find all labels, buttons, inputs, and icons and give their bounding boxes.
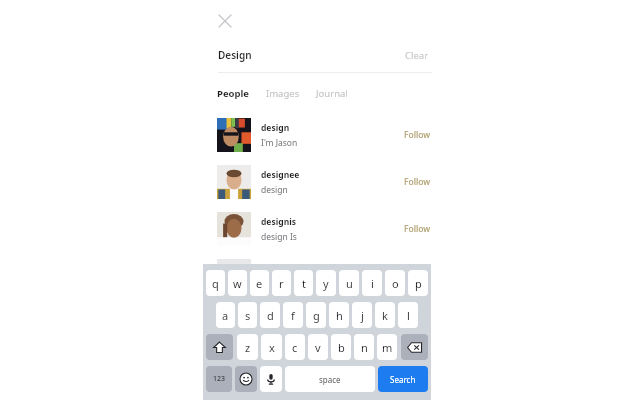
staticText: t xyxy=(302,276,306,291)
staticText: a xyxy=(222,308,229,323)
staticText: u xyxy=(346,276,353,291)
staticText: design Is xyxy=(261,231,297,243)
button[interactable]: Follow xyxy=(400,172,435,192)
staticText: b xyxy=(338,340,345,355)
staticText: Follow xyxy=(404,223,431,235)
button[interactable]: l xyxy=(398,302,418,328)
button[interactable]: t xyxy=(294,270,313,296)
staticText: o xyxy=(392,276,399,291)
staticText: q xyxy=(212,276,219,291)
button[interactable]: Shift xyxy=(206,334,233,360)
button[interactable]: n xyxy=(354,334,374,360)
staticText: Follow xyxy=(404,176,431,188)
staticText: w xyxy=(233,276,242,291)
staticText: y xyxy=(323,276,329,291)
staticText: e xyxy=(256,276,263,291)
button[interactable]: designee xyxy=(0,165,640,199)
staticText: f xyxy=(291,308,295,323)
staticText: x xyxy=(269,340,275,355)
staticText: design xyxy=(261,184,288,196)
staticText: k xyxy=(382,308,388,323)
button[interactable]: People xyxy=(217,83,250,104)
button[interactable]: space xyxy=(285,366,375,392)
button[interactable]: b xyxy=(331,334,351,360)
staticText: j xyxy=(361,308,364,323)
button[interactable]: s xyxy=(238,302,257,328)
button[interactable]: u xyxy=(339,270,359,296)
button[interactable]: i xyxy=(362,270,382,296)
button[interactable]: j xyxy=(352,302,372,328)
staticText: I'm Jason xyxy=(261,137,298,149)
staticText: i xyxy=(371,276,374,291)
button[interactable]: h xyxy=(329,302,349,328)
button[interactable]: designis xyxy=(0,212,640,246)
staticText: People xyxy=(217,87,250,100)
button[interactable]: y xyxy=(316,270,336,296)
staticText: g xyxy=(313,308,320,323)
staticText: v xyxy=(315,340,321,355)
staticText: Follow xyxy=(404,129,431,141)
staticText: m xyxy=(382,340,393,355)
button[interactable]: Emoji xyxy=(235,366,257,392)
button[interactable]: z xyxy=(237,334,258,360)
button[interactable]: g xyxy=(306,302,326,328)
staticText: designee xyxy=(261,169,300,181)
button[interactable]: Journal xyxy=(316,83,348,104)
staticText: Design xyxy=(218,48,252,62)
staticText: c xyxy=(292,340,298,355)
staticText: h xyxy=(336,308,343,323)
button[interactable]: design xyxy=(0,118,640,152)
button[interactable]: x xyxy=(261,334,282,360)
staticText: r xyxy=(279,276,284,291)
button[interactable]: 123 xyxy=(206,366,232,392)
button[interactable]: f xyxy=(283,302,303,328)
staticText: design xyxy=(261,122,290,134)
staticText: s xyxy=(245,308,251,323)
button[interactable]: Follow xyxy=(400,219,435,239)
staticText: z xyxy=(245,340,251,355)
button[interactable]: Follow xyxy=(400,125,435,145)
button[interactable]: k xyxy=(375,302,395,328)
button[interactable]: Dictate xyxy=(260,366,282,392)
button[interactable]: Images xyxy=(266,83,300,104)
button[interactable]: Search xyxy=(378,366,428,392)
button[interactable]: Close xyxy=(210,6,240,36)
button[interactable]: a xyxy=(216,302,235,328)
staticText: n xyxy=(361,340,368,355)
button[interactable]: c xyxy=(285,334,305,360)
staticText: l xyxy=(407,308,410,323)
staticText: Images xyxy=(266,87,300,100)
staticText: 123 xyxy=(213,374,226,384)
button[interactable]: o xyxy=(385,270,405,296)
button[interactable]: Clear xyxy=(402,46,432,65)
staticText: space xyxy=(319,374,341,385)
button[interactable]: q xyxy=(206,270,225,296)
button[interactable]: p xyxy=(408,270,428,296)
staticText: Clear xyxy=(405,49,429,62)
staticText: d xyxy=(267,308,274,323)
button[interactable]: m xyxy=(377,334,397,360)
button[interactable]: r xyxy=(272,270,291,296)
button[interactable]: Backspace xyxy=(401,334,428,360)
button[interactable]: e xyxy=(250,270,269,296)
button[interactable]: v xyxy=(308,334,328,360)
button[interactable]: d xyxy=(260,302,280,328)
button[interactable]: w xyxy=(228,270,247,296)
staticText: p xyxy=(415,276,422,291)
staticText: Search xyxy=(390,374,416,385)
staticText: designis xyxy=(261,216,296,228)
staticText: Journal xyxy=(316,87,348,100)
